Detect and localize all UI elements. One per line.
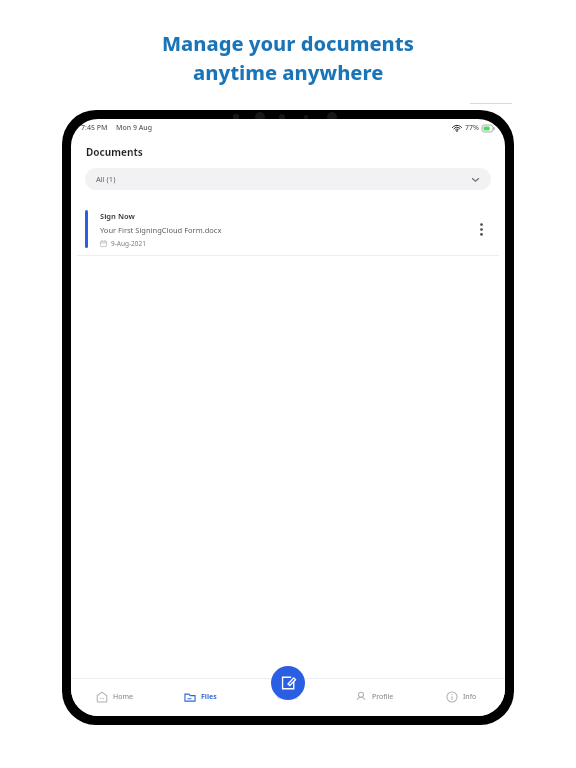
button[interactable]: Home [71,678,157,716]
staticText: Manage your documents [162,30,414,57]
staticText: 77% [465,123,479,133]
staticText: Mon 9 Aug [116,123,153,133]
staticText: Your First SigningCloud Form.docx [100,225,222,235]
button[interactable]: Info [418,678,505,716]
staticText: Files [201,692,217,702]
button[interactable]: All (1) [85,168,491,190]
button[interactable]: Sign Now [71,203,505,255]
button[interactable]: More options [471,219,491,239]
staticText: anytime anywhere [193,59,384,86]
staticText: Home [113,692,133,702]
button[interactable]: Create [244,678,331,716]
staticText: Info [463,692,477,702]
button[interactable]: Files [157,678,244,716]
button[interactable]: Create [271,666,305,700]
staticText: Sign Now [100,211,135,221]
button[interactable]: Profile [331,678,418,716]
staticText: Documents [86,145,143,159]
staticText: 9-Aug-2021 [111,239,146,248]
staticText: 7:45 PM [81,123,108,133]
staticText: Profile [372,692,394,702]
staticText: All (1) [96,174,116,184]
staticText: Create [277,692,299,702]
